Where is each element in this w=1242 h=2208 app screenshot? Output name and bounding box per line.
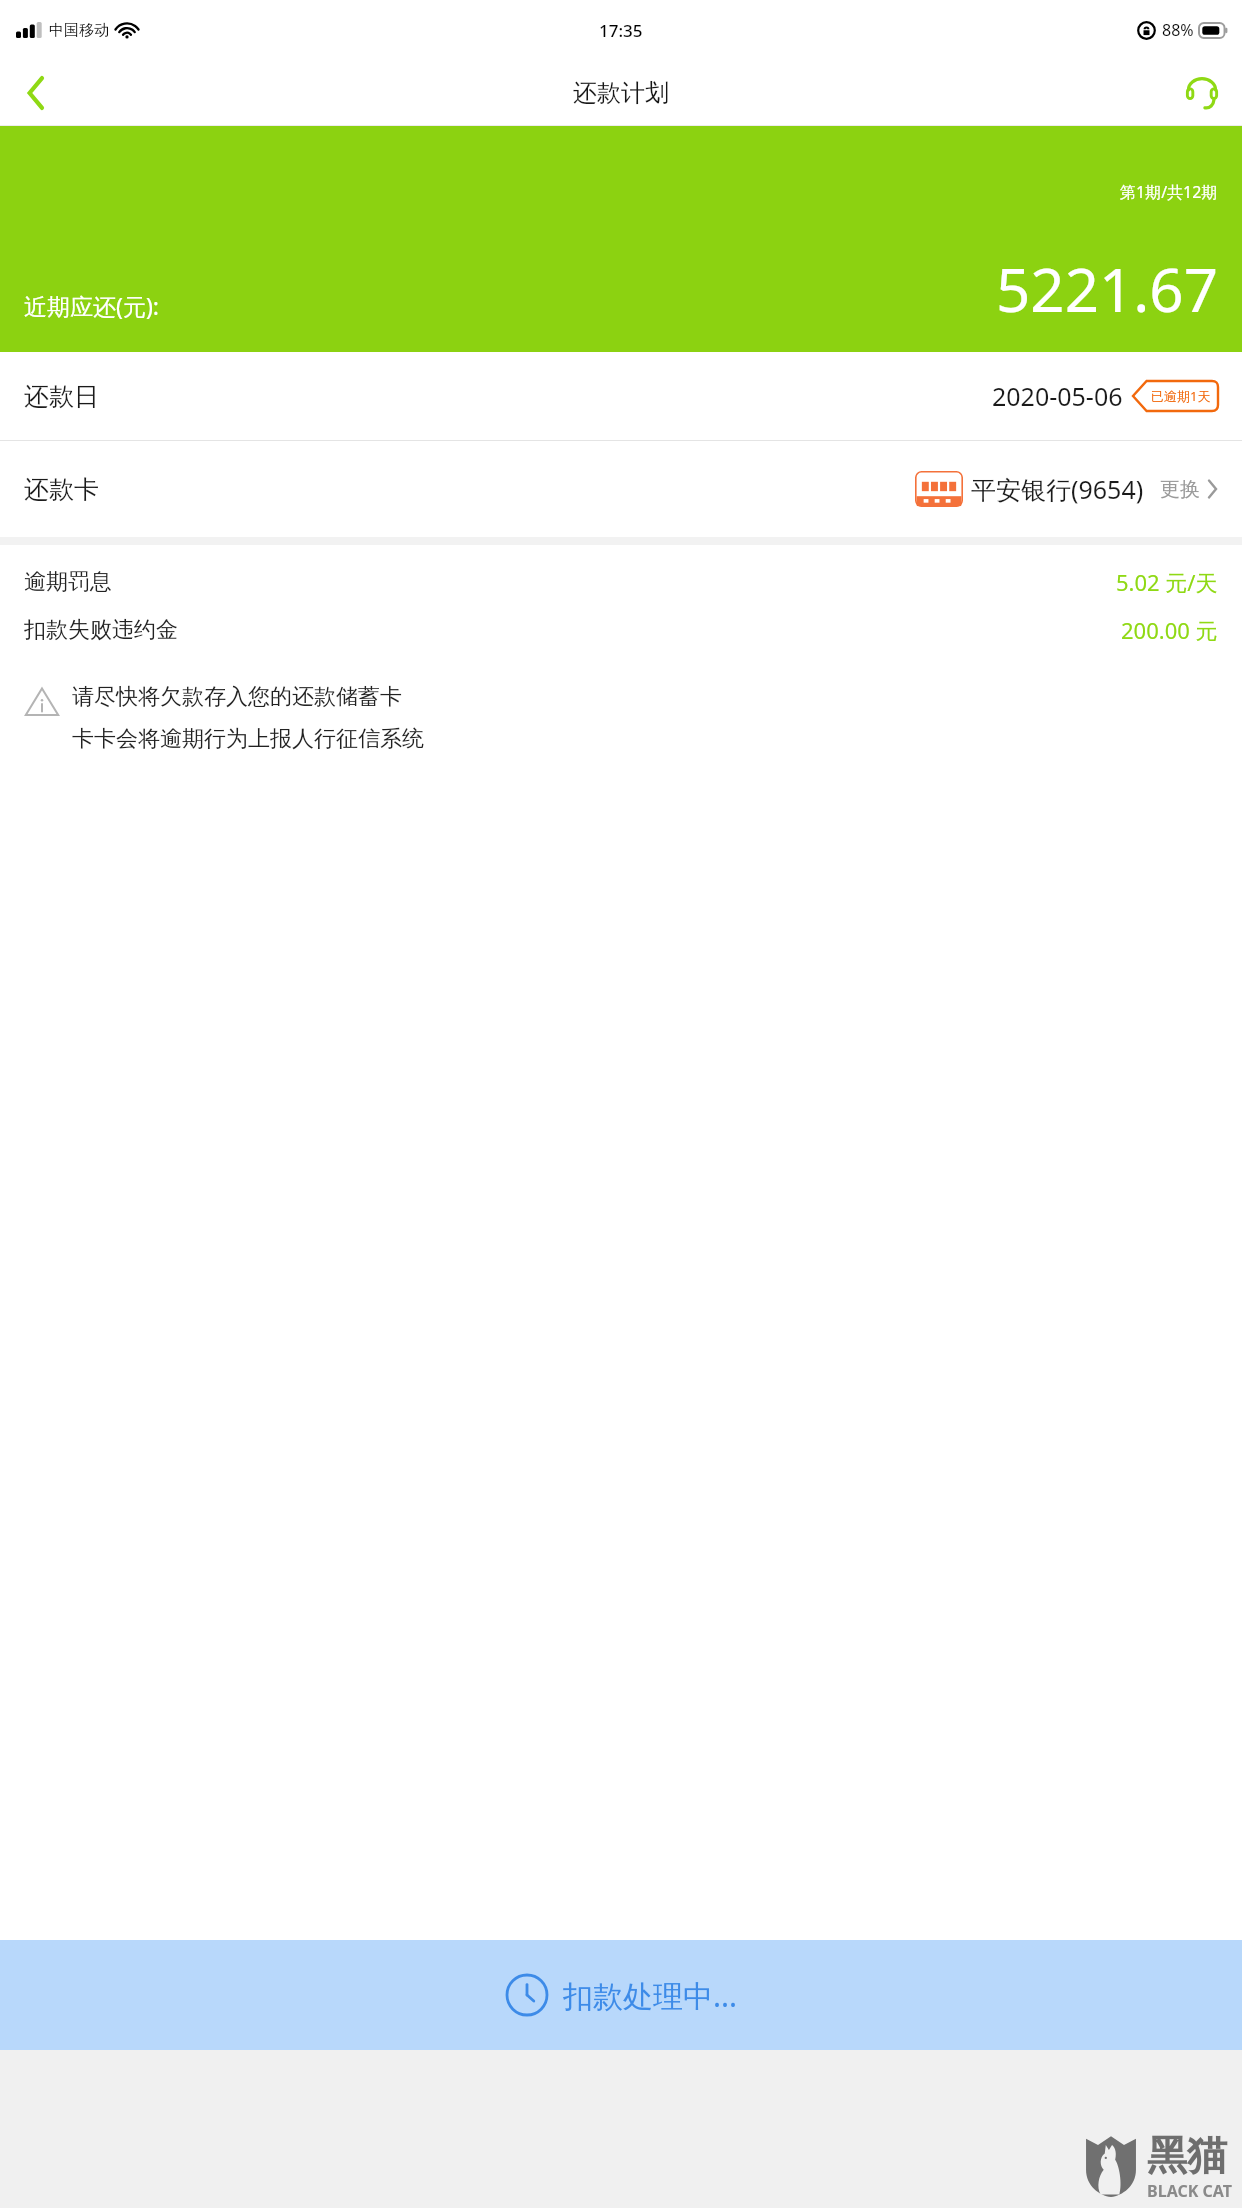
button[interactable]: 还款卡 bbox=[0, 441, 1242, 537]
staticText: 88% bbox=[1162, 19, 1194, 41]
staticText: 5221.67 bbox=[996, 248, 1218, 330]
staticText: 2020-05-06 bbox=[992, 379, 1123, 413]
staticText: 200.00 元 bbox=[1121, 615, 1218, 645]
staticText: 扣款失败违约金 bbox=[24, 616, 178, 644]
staticText: 还款计划 bbox=[573, 78, 669, 108]
button[interactable]: Back bbox=[0, 60, 72, 126]
button[interactable]: Customer service bbox=[1162, 60, 1242, 126]
staticText: 逾期罚息 bbox=[24, 568, 112, 596]
staticText: 第1期/共12期 bbox=[1120, 181, 1218, 203]
staticText: 更换 bbox=[1160, 477, 1200, 502]
staticText: 近期应还(元): bbox=[24, 290, 159, 321]
button[interactable]: 扣款处理中... bbox=[0, 1940, 1242, 2050]
staticText: 还款卡 bbox=[24, 474, 99, 505]
staticText: 扣款处理中... bbox=[563, 1975, 738, 2016]
staticText: 还款日 bbox=[24, 381, 99, 412]
staticText: 5.02 元/天 bbox=[1116, 567, 1218, 597]
staticText: 请尽快将欠款存入您的还款储蓄卡 bbox=[72, 683, 402, 711]
staticText: 已逾期1天 bbox=[1151, 387, 1211, 405]
staticText: BLACK CAT bbox=[1147, 2180, 1232, 2202]
staticText: 中国移动 bbox=[49, 21, 109, 40]
staticText: 黑猫 bbox=[1147, 2130, 1227, 2180]
staticText: 卡卡会将逾期行为上报人行征信系统 bbox=[72, 725, 424, 753]
staticText: 17:35 bbox=[599, 19, 643, 42]
button[interactable]: 还款日 bbox=[0, 352, 1242, 440]
staticText: 平安银行(9654) bbox=[971, 472, 1144, 506]
